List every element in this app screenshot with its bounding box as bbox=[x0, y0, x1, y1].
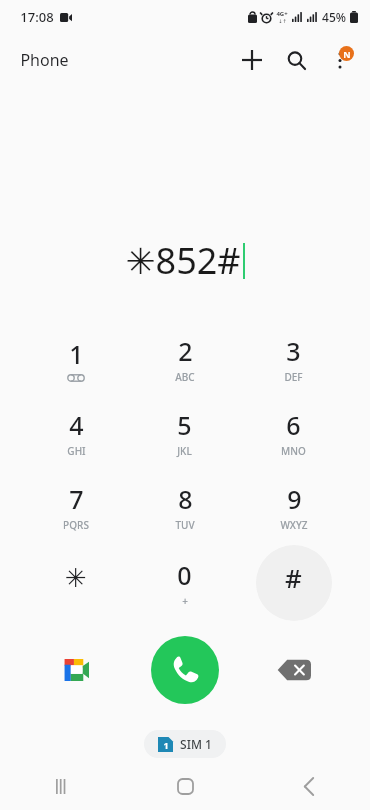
staticText: Phone bbox=[20, 49, 69, 71]
staticText: TUV bbox=[175, 518, 195, 532]
staticText: ✳ bbox=[65, 563, 87, 593]
staticText: 2 bbox=[178, 334, 193, 368]
staticText: 1 bbox=[163, 739, 169, 751]
staticText: 0 bbox=[177, 558, 192, 592]
button[interactable]: Add contact bbox=[230, 38, 274, 82]
staticText: SIM 1 bbox=[180, 736, 212, 752]
staticText: ABC bbox=[175, 370, 195, 384]
button[interactable]: Search bbox=[274, 38, 318, 82]
staticText: # bbox=[285, 560, 302, 595]
staticText: DEF bbox=[284, 370, 303, 384]
button[interactable]: 8 bbox=[130, 470, 239, 544]
button[interactable]: Recents bbox=[0, 762, 124, 810]
staticText: 6 bbox=[286, 408, 301, 442]
button[interactable]: Video call bbox=[22, 634, 130, 706]
staticText: JKL bbox=[177, 444, 192, 458]
button[interactable]: More options bbox=[318, 38, 362, 82]
staticText: 7 bbox=[69, 482, 84, 516]
button[interactable]: 3 bbox=[239, 322, 348, 396]
staticText: 8 bbox=[178, 482, 193, 516]
button[interactable]: # bbox=[239, 544, 348, 622]
staticText: 17:08 bbox=[20, 8, 54, 26]
button[interactable]: Home bbox=[124, 762, 247, 810]
staticText: ↓↑ bbox=[278, 18, 287, 24]
button[interactable]: 1 bbox=[22, 322, 130, 396]
staticText: PQRS bbox=[63, 518, 89, 532]
button[interactable]: ✳ bbox=[22, 544, 130, 622]
button[interactable]: 1 bbox=[144, 730, 226, 758]
button[interactable]: 7 bbox=[22, 470, 130, 544]
staticText: MNO bbox=[281, 444, 306, 458]
staticText: 4 bbox=[69, 408, 84, 442]
staticText: 45% bbox=[322, 9, 346, 25]
button[interactable]: 2 bbox=[130, 322, 239, 396]
staticText: ✳852# bbox=[125, 236, 241, 285]
button[interactable]: Delete bbox=[239, 634, 348, 706]
staticText: N bbox=[343, 48, 351, 60]
staticText: 4G+ bbox=[276, 10, 288, 18]
button[interactable]: Call bbox=[130, 634, 239, 706]
staticText: 5 bbox=[177, 408, 192, 442]
button[interactable]: 0 bbox=[130, 544, 239, 622]
staticText: 1 bbox=[69, 337, 84, 371]
button[interactable]: 6 bbox=[239, 396, 348, 470]
staticText: WXYZ bbox=[280, 518, 308, 532]
staticText: 9 bbox=[287, 482, 302, 516]
button[interactable]: 5 bbox=[130, 396, 239, 470]
button[interactable]: 4 bbox=[22, 396, 130, 470]
button[interactable]: Back bbox=[247, 762, 370, 810]
button[interactable]: Phone bbox=[20, 49, 69, 71]
staticText: GHI bbox=[67, 444, 86, 458]
button[interactable]: 9 bbox=[239, 470, 348, 544]
staticText: + bbox=[182, 594, 188, 608]
staticText: 3 bbox=[286, 334, 301, 368]
